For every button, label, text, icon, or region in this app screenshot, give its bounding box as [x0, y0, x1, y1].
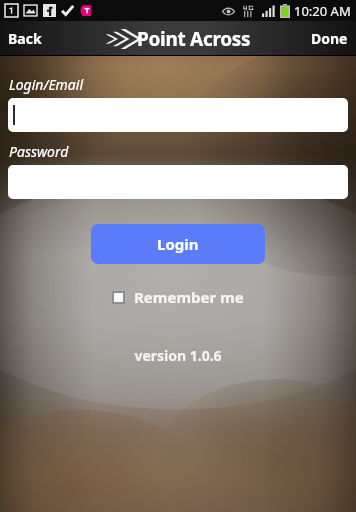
staticText: Remember me [134, 287, 244, 307]
staticText: Point Across [137, 26, 251, 52]
button[interactable] [8, 165, 348, 199]
staticText: Login/Email [9, 75, 84, 94]
staticText: Back [8, 29, 42, 48]
button[interactable] [8, 98, 348, 132]
button[interactable]: Back [0, 21, 54, 56]
button[interactable]: Done [299, 21, 356, 56]
staticText: Password [9, 142, 69, 161]
staticText: 10:20 AM [294, 2, 351, 20]
button[interactable]: Login [91, 224, 265, 264]
button[interactable]: Remember me [108, 285, 248, 309]
staticText: Login [157, 234, 199, 254]
staticText: Done [311, 29, 348, 48]
staticText: version 1.0.6 [0, 346, 356, 365]
